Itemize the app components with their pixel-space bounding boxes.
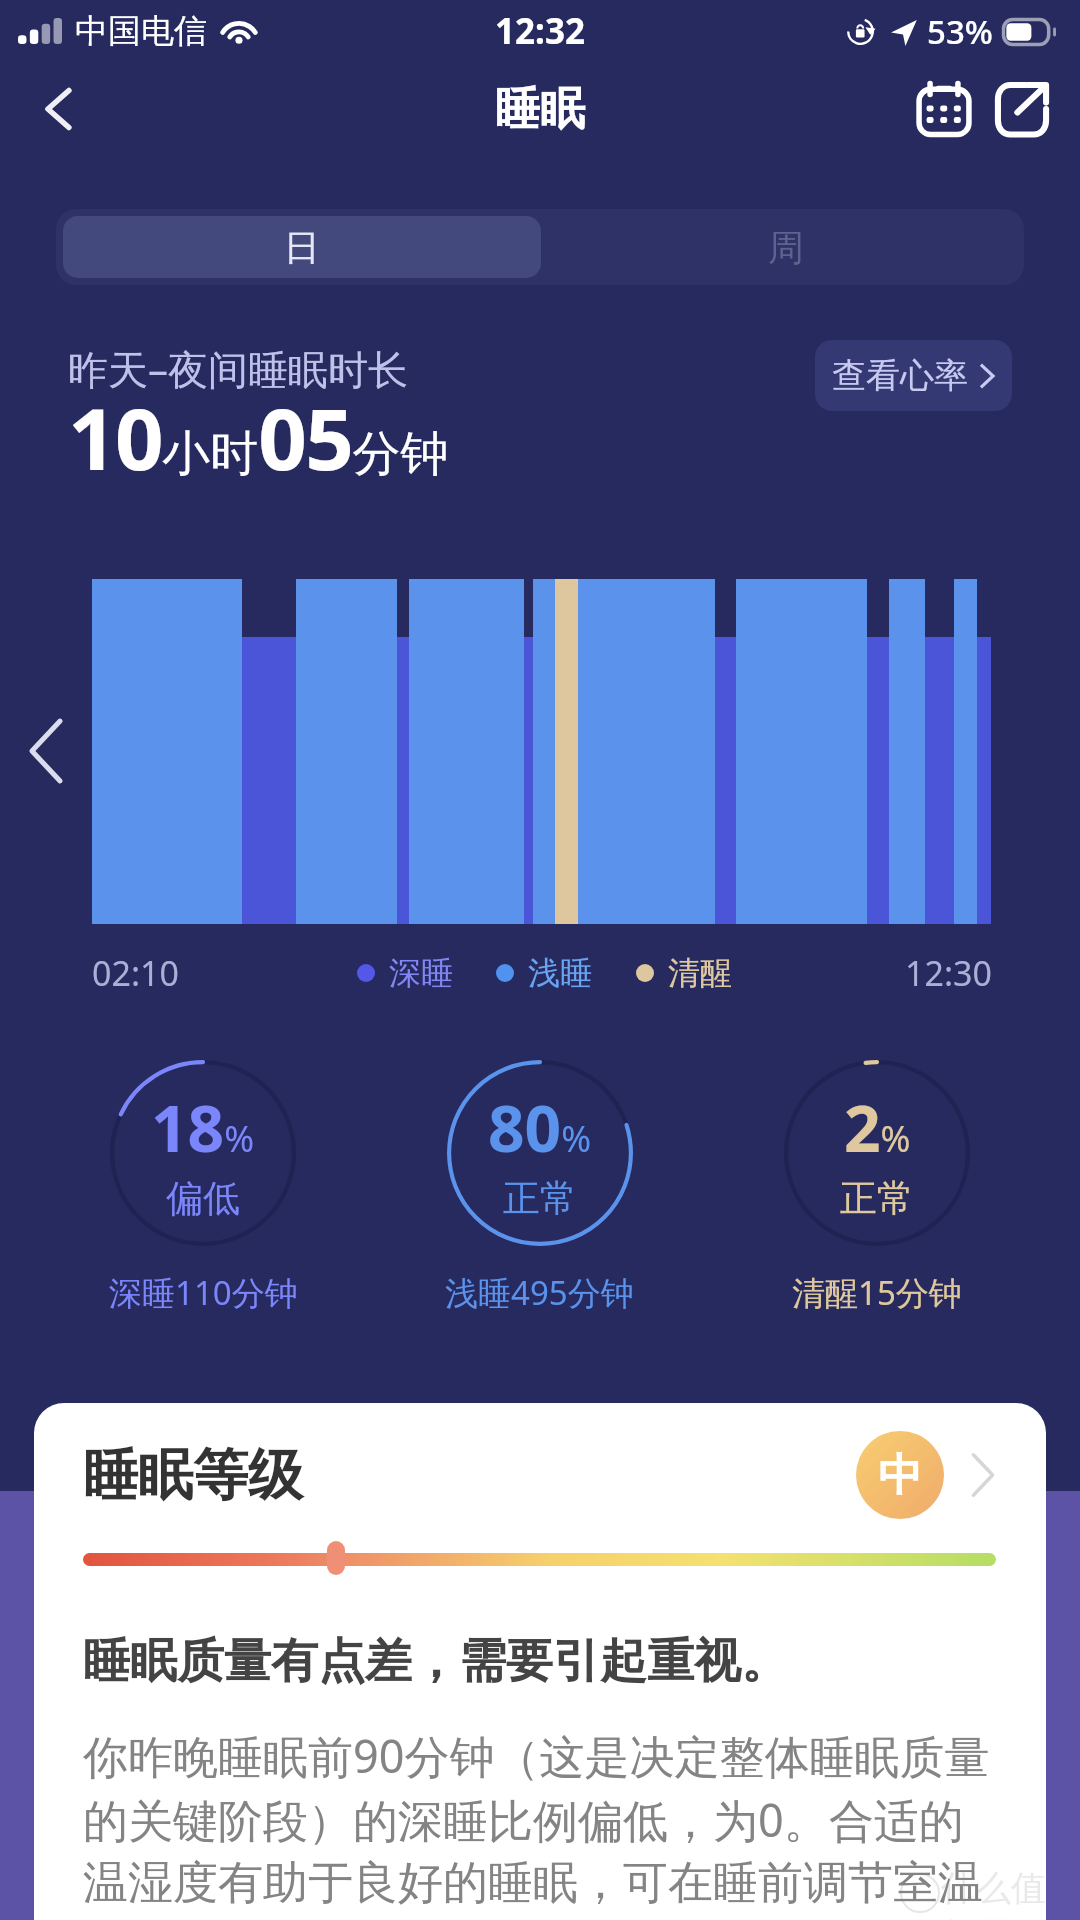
staticText: 深睡 <box>389 953 453 993</box>
staticText: 53% <box>927 9 993 54</box>
staticText: 浅睡495分钟 <box>445 1270 634 1315</box>
staticText: 睡眠等级 <box>83 1441 303 1510</box>
staticText: 80% <box>488 1084 592 1171</box>
staticText: 清醒 <box>668 953 732 993</box>
staticText: 中国电信 <box>75 10 207 52</box>
button[interactable]: 查看心率 <box>815 340 1012 411</box>
staticText: 偏低 <box>166 1175 240 1222</box>
staticText: 查看心率 <box>832 354 968 397</box>
staticText: 02:10 <box>92 950 179 996</box>
staticText: 2% <box>844 1084 911 1171</box>
staticText: 睡眠质量有点差，需要引起重视。 <box>83 1632 788 1691</box>
staticText: 正常 <box>840 1175 914 1222</box>
staticText: 深睡110分钟 <box>109 1270 298 1315</box>
staticText: 浅睡 <box>528 953 592 993</box>
button[interactable]: Back <box>18 69 98 149</box>
staticText: 睡眠 <box>495 81 585 138</box>
staticText: 周 <box>768 225 804 270</box>
button[interactable]: Share <box>984 71 1060 147</box>
staticText: 18% <box>151 1084 255 1171</box>
staticText: 日 <box>284 225 320 270</box>
staticText: 正常 <box>503 1175 577 1222</box>
button[interactable]: Calendar <box>906 71 982 147</box>
staticText: 12:30 <box>905 950 992 996</box>
staticText: 什么值得买 <box>941 1866 1080 1920</box>
staticText: 昨天–夜间睡眠时长 <box>68 341 408 396</box>
staticText: 12:32 <box>495 7 585 55</box>
button[interactable]: 睡眠等级 <box>83 1427 995 1523</box>
staticText: 清醒15分钟 <box>792 1270 962 1315</box>
button[interactable]: 日 <box>63 216 541 278</box>
staticText: 你昨晚睡眠前90分钟（这是决定整体睡眠质量的关键阶段）的深睡比例偏低，为0。合适… <box>83 1725 1001 1911</box>
button[interactable]: 周 <box>548 209 1024 285</box>
staticText: 10小时05分钟 <box>68 379 449 495</box>
staticText: 中 <box>878 1448 922 1503</box>
